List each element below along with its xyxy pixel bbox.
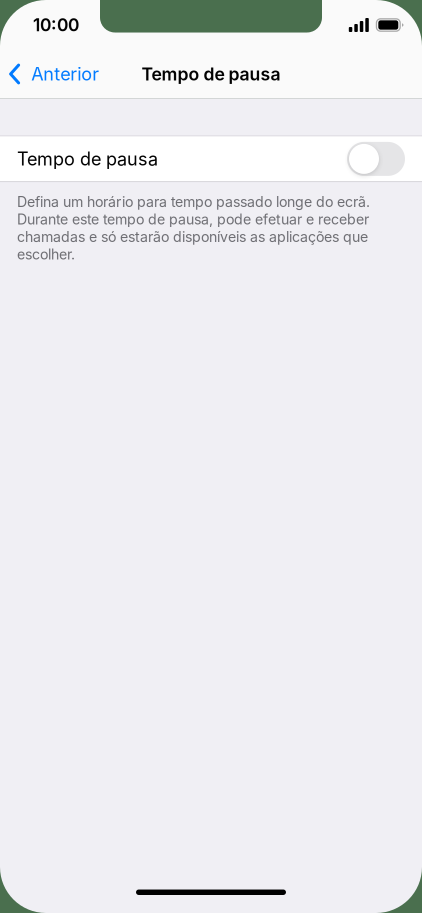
button[interactable]: Anterior [0,50,109,98]
staticText: Defina um horário para tempo passado lon… [17,193,370,210]
staticText: escolher. [17,246,75,263]
staticText: 10:00 [33,14,79,35]
staticText: Anterior [31,63,99,85]
staticText: chamadas e só estarão disponíveis as apl… [17,228,368,245]
button[interactable]: Tempo de pausa [0,136,422,181]
staticText: Durante este tempo de pausa, pode efetua… [17,211,369,228]
staticText: Tempo de pausa [141,63,280,85]
staticText: Tempo de pausa [17,148,158,170]
